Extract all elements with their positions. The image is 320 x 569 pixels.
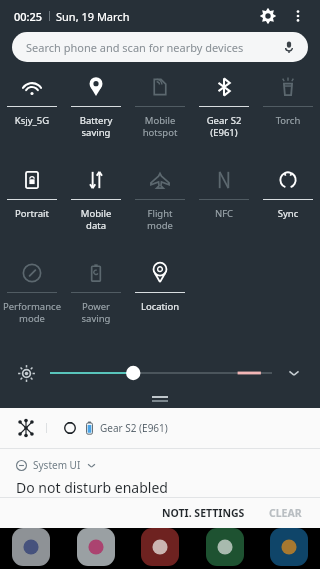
- button[interactable]: [77, 528, 115, 566]
- button[interactable]: Gear S2 (E961): [192, 68, 256, 161]
- staticText: Mobile hotspot: [128, 114, 192, 139]
- button[interactable]: [50, 361, 272, 385]
- button[interactable]: Performance mode: [0, 254, 64, 347]
- staticText: Torch: [256, 114, 320, 127]
- other: Brightness: [14, 361, 38, 385]
- button[interactable]: [12, 528, 50, 566]
- button[interactable]: Ksjy_5G: [0, 68, 64, 161]
- button[interactable]: [206, 528, 244, 566]
- staticText: System UI: [33, 458, 81, 472]
- staticText: Portrait: [0, 207, 64, 220]
- button[interactable]: Search phone and scan for nearby devices: [12, 32, 308, 62]
- button[interactable]: System UI: [0, 449, 320, 497]
- staticText: Flight mode: [128, 207, 192, 232]
- button[interactable]: Location: [128, 254, 192, 347]
- staticText: Location: [128, 300, 192, 313]
- button[interactable]: [270, 528, 308, 566]
- button[interactable]: Sync: [256, 161, 320, 254]
- staticText: Sun, 19 March: [56, 9, 130, 24]
- staticText: Power saving: [64, 300, 128, 325]
- staticText: NOTI. SETTINGS: [162, 506, 245, 520]
- staticText: Battery saving: [64, 114, 128, 139]
- staticText: 00:25: [14, 9, 43, 24]
- button[interactable]: Flight mode: [128, 161, 192, 254]
- button[interactable]: Portrait: [0, 161, 64, 254]
- button[interactable]: Mobile hotspot: [128, 68, 192, 161]
- button[interactable]: Mobile data: [64, 161, 128, 254]
- staticText: Search phone and scan for nearby devices: [26, 40, 244, 55]
- staticText: Ksjy_5G: [0, 114, 64, 127]
- button[interactable]: Expand brightness settings: [282, 361, 306, 385]
- staticText: Gear S2 (E961): [100, 421, 168, 435]
- staticText: Do not disturb enabled: [16, 478, 168, 497]
- button[interactable]: Gear S2 (E961): [0, 408, 320, 448]
- button[interactable]: Torch: [256, 68, 320, 161]
- button[interactable]: Settings: [252, 0, 284, 32]
- button[interactable]: NFC: [192, 161, 256, 254]
- button[interactable]: Battery saving: [64, 68, 128, 161]
- button[interactable]: CLEAR: [259, 498, 320, 528]
- staticText: CLEAR: [269, 506, 302, 520]
- staticText: Gear S2 (E961): [192, 114, 256, 139]
- button[interactable]: NOTI. SETTINGS: [148, 498, 259, 528]
- button[interactable]: More options: [284, 2, 312, 30]
- staticText: Mobile data: [64, 207, 128, 232]
- staticText: Sync: [256, 207, 320, 220]
- staticText: NFC: [192, 207, 256, 220]
- staticText: Performance mode: [0, 300, 64, 325]
- button[interactable]: Power saving: [64, 254, 128, 347]
- button[interactable]: [141, 528, 179, 566]
